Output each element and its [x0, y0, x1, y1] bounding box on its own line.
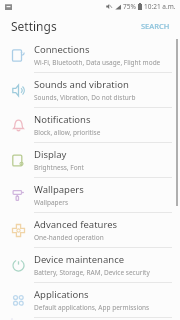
- staticText: Connections: [34, 43, 90, 56]
- staticText: Default applications, App permissions: [34, 303, 150, 312]
- staticText: Sounds and vibration: [34, 78, 129, 91]
- staticText: One-handed operation: [34, 233, 104, 242]
- button[interactable]: Device maintenance: [0, 248, 180, 282]
- staticText: Settings: [11, 18, 57, 34]
- button[interactable]: Display: [0, 143, 180, 177]
- other: Notifications: [11, 118, 26, 133]
- other: Device maintenance: [11, 258, 26, 273]
- other: Applications: [11, 293, 26, 308]
- staticText: Advanced features: [34, 218, 118, 231]
- staticText: Block, allow, prioritise: [34, 128, 101, 137]
- staticText: Applications: [34, 288, 89, 301]
- other: Wallpapers: [11, 188, 26, 203]
- button[interactable]: Wallpapers: [0, 178, 180, 212]
- button[interactable]: Applications: [0, 283, 180, 317]
- button[interactable]: Notifications: [0, 108, 180, 142]
- other: Sounds and vibration: [11, 83, 26, 98]
- staticText: Wi-Fi, Bluetooth, Data usage, Flight mod…: [34, 58, 161, 67]
- staticText: Wallpapers: [34, 183, 84, 196]
- staticText: Device maintenance: [34, 253, 125, 266]
- other: Display: [11, 153, 26, 168]
- staticText: Battery, Storage, RAM, Device security: [34, 268, 150, 277]
- other: Advanced features: [11, 223, 26, 238]
- staticText: Display: [34, 148, 67, 161]
- button[interactable]: SEARCH: [131, 16, 180, 36]
- button[interactable]: Advanced features: [0, 213, 180, 247]
- staticText: Notifications: [34, 113, 91, 126]
- staticText: 75%: [123, 2, 136, 11]
- button[interactable]: Sounds and vibration: [0, 73, 180, 107]
- staticText: Brightness, Font: [34, 163, 84, 172]
- other: Connections: [11, 48, 26, 63]
- staticText: SEARCH: [141, 21, 170, 31]
- staticText: 10:21 a.m.: [144, 2, 176, 11]
- staticText: Wallpapers: [34, 198, 69, 207]
- button[interactable]: Connections: [0, 38, 180, 72]
- staticText: Sounds, Vibration, Do not disturb: [34, 93, 136, 102]
- other: Lock screen and security: [11, 318, 26, 320]
